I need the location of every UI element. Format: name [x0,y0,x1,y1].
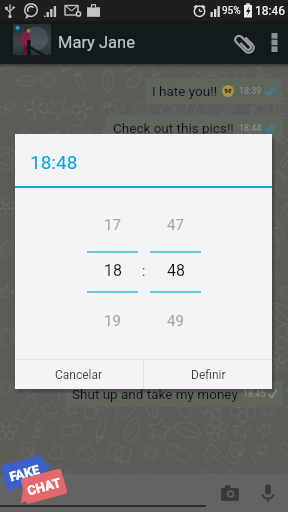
staticText: 18:45 [243,389,266,400]
staticText: Shut up and take my money [72,386,238,402]
staticText: 18:44 [239,123,262,134]
staticText: Check out this pics!! [113,120,234,136]
button[interactable]: More options [263,21,285,64]
staticText: 48 [167,261,185,280]
button[interactable]: Definir [144,360,272,389]
staticText: FAKE [8,462,42,484]
button[interactable]: Voice message [252,478,284,508]
staticText: Cancelar [55,368,103,382]
staticText: 18 [104,261,122,280]
staticText: CHAT [26,475,63,498]
button[interactable]: 18 [87,260,138,281]
staticText: Mary Jane [58,33,135,52]
staticText: 19 [104,312,121,330]
staticText: 47 [167,216,184,234]
staticText: 49 [167,312,184,330]
staticText: 17 [104,216,121,234]
staticText: 18:39 [239,86,262,97]
staticText: 18:46 [255,4,285,18]
staticText: 95% [222,5,241,17]
staticText: I hate you!! [152,83,218,99]
staticText: 18:48 [30,151,78,173]
staticText: : [142,263,146,279]
button[interactable]: Attach [227,21,263,64]
button[interactable]: Camera [213,478,246,508]
staticText: Definir [191,368,226,382]
button[interactable]: Cancelar [15,360,143,389]
button[interactable]: 48 [150,260,201,281]
